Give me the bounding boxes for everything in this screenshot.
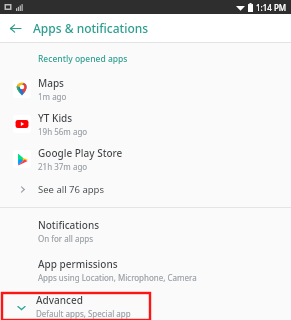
staticText: Notifications	[38, 218, 100, 232]
button[interactable]: App permissions	[0, 255, 291, 285]
button[interactable]: See all 76 apps	[0, 176, 291, 202]
button[interactable]: Advanced	[2, 293, 150, 320]
staticText: Apps using Location, Microphone, Camera	[38, 272, 197, 283]
staticText: 21h 37m ago	[38, 161, 88, 172]
button[interactable]: Back	[7, 20, 23, 36]
staticText: 1:14 PM	[256, 2, 287, 13]
staticText: App permissions	[38, 257, 118, 271]
staticText: 19h 56m ago	[38, 126, 88, 137]
staticText: 1m ago	[38, 91, 67, 102]
staticText: YT Kids	[38, 111, 73, 125]
button[interactable]: YT Kids	[0, 106, 291, 141]
button[interactable]: Maps	[0, 71, 291, 106]
staticText: Advanced	[36, 293, 83, 307]
staticText: Default apps, Special app access	[36, 308, 150, 320]
staticText: Recently opened apps	[38, 53, 128, 65]
button[interactable]: Google Play Store	[0, 141, 291, 176]
staticText: Maps	[38, 76, 64, 90]
staticText: Google Play Store	[38, 146, 123, 160]
button[interactable]: Notifications	[0, 216, 291, 246]
staticText: See all 76 apps	[38, 183, 105, 196]
staticText: On for all apps	[38, 233, 94, 244]
staticText: Apps & notifications	[33, 20, 149, 36]
